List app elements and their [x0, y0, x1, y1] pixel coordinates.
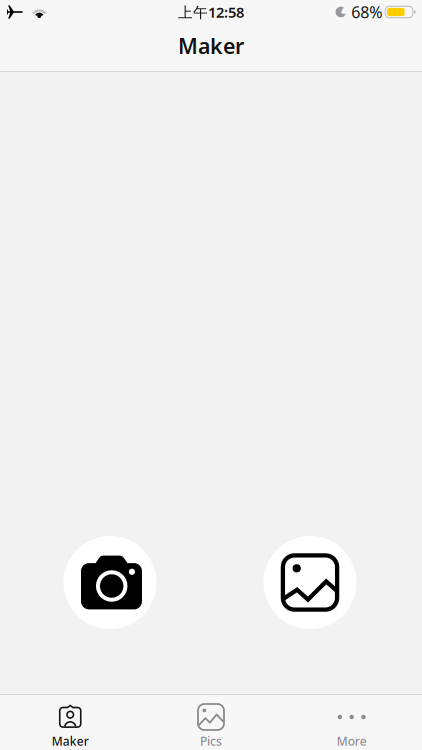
staticText: 68%: [351, 1, 382, 23]
staticText: Maker: [178, 32, 244, 60]
button[interactable]: Take photo: [63, 536, 156, 629]
button[interactable]: More: [281, 694, 422, 750]
button[interactable]: Choose from library: [263, 536, 356, 629]
button[interactable]: Pics: [141, 694, 281, 750]
staticText: More: [337, 733, 367, 749]
staticText: 上午12:58: [178, 2, 244, 22]
button[interactable]: Maker: [0, 694, 141, 750]
staticText: Maker: [52, 733, 89, 749]
staticText: Pics: [200, 733, 222, 749]
